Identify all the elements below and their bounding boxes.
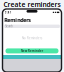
staticText: Create reminders (3, 0, 60, 9)
button[interactable]: New Reminder (5, 48, 58, 53)
staticText: New Reminder (21, 49, 43, 53)
staticText: Reminders (4, 16, 31, 23)
staticText: No Reminders (22, 36, 42, 40)
staticText: 9:41 (5, 11, 12, 14)
staticText: Search (5, 24, 13, 28)
button[interactable]: Search (4, 25, 60, 28)
